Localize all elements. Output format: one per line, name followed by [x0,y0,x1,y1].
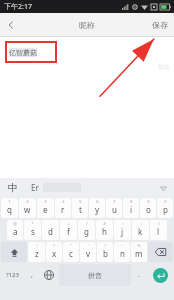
button[interactable]: 6 [89,198,105,218]
button[interactable]: 返回 [0,14,22,36]
button[interactable]: 切换输入法 [40,264,57,286]
button[interactable]: / [78,220,95,240]
staticText: h [102,226,107,237]
staticText: - [50,221,52,226]
staticText: q [7,204,12,215]
button[interactable]: 保存 [146,13,174,36]
staticText: d [48,226,53,237]
button[interactable]: Er [31,182,39,193]
button[interactable]: 收起键盘 [155,180,171,196]
staticText: i [130,204,133,215]
staticText: 6 [96,199,99,204]
staticText: 4 [62,199,65,204]
staticText: j [121,226,124,237]
button[interactable]: + [60,220,77,240]
staticText: 5 [79,199,82,204]
button[interactable]: 亿智蘑菇 [5,41,57,63]
staticText: g [84,226,89,237]
staticText: s [31,226,35,237]
staticText: u [112,204,117,215]
button[interactable]: 1 [1,198,18,218]
button[interactable]: @ [7,220,23,240]
staticText: l [157,226,160,237]
staticText: ! [36,243,38,248]
button[interactable]: 5 [72,198,88,218]
button[interactable]: ! [28,242,45,262]
staticText: t [79,204,82,215]
button[interactable]: 9 [140,198,156,218]
staticText: 3 [44,199,47,204]
staticText: ? [53,243,55,248]
button[interactable]: # [96,220,113,240]
button[interactable]: 2 [19,198,36,218]
staticText: 保存 [152,20,168,30]
staticText: 中 [8,181,18,194]
button[interactable]: 3 [37,198,54,218]
staticText: " [70,243,72,248]
button[interactable]: 0 [157,198,173,218]
staticText: ?123 [6,271,19,279]
staticText: a [13,226,18,237]
staticText: r [61,204,65,215]
staticText: n [120,248,125,259]
button[interactable]: 拼音 [59,264,131,286]
staticText: m [135,248,143,259]
button[interactable]: ) [97,242,113,262]
staticText: e [43,204,48,215]
staticText: 下午2:17 [4,2,32,12]
button[interactable]: 删除 [148,242,173,262]
staticText: k [138,226,143,237]
staticText: , [31,270,33,280]
staticText: 9 [147,199,150,204]
staticText: y [95,204,100,215]
staticText: 亿智蘑菇 [9,48,37,57]
button[interactable]: ? [46,242,62,262]
button[interactable]: 8 [123,198,139,218]
button[interactable]: Shift [1,242,27,262]
button[interactable]: % [131,242,147,262]
button[interactable]: 4 [55,198,71,218]
staticText: 7 [113,199,116,204]
staticText: @ [13,221,17,226]
staticText: # [103,221,106,226]
staticText: f [67,226,70,237]
button[interactable]: ?123 [1,264,24,286]
button[interactable]: " [63,242,79,262]
button[interactable]: , [26,264,38,286]
staticText: z [35,248,39,259]
button[interactable]: 回车 [147,264,173,286]
staticText: w [24,204,31,215]
staticText: ) [104,243,106,248]
staticText: : [122,221,124,226]
staticText: . [138,270,140,280]
button[interactable]: * [24,220,41,240]
button[interactable]: . [133,264,145,286]
button[interactable]: 7 [106,198,122,218]
staticText: o [146,204,151,215]
staticText: v [86,248,91,259]
button[interactable]: : [114,220,131,240]
staticText: x [52,248,57,259]
staticText: ; [140,221,142,226]
staticText: * [31,221,34,226]
staticText: ~ [121,243,124,248]
staticText: / [86,221,88,226]
button[interactable]: ; [132,220,149,240]
staticText: 拼音 [88,271,102,280]
button[interactable]: ( [150,220,167,240]
staticText: b [103,248,108,259]
staticText: ( [158,221,160,226]
staticText: 8 [130,199,133,204]
staticText: 昵称 [79,20,95,30]
staticText: + [67,221,70,226]
staticText: p [163,204,168,215]
staticText: ' [88,243,89,248]
staticText: 1 [8,199,11,204]
staticText: % [137,243,141,248]
button[interactable]: ~ [114,242,130,262]
button[interactable]: - [42,220,59,240]
button[interactable]: ' [80,242,96,262]
staticText: 2 [26,199,29,204]
button[interactable]: 中英文切换 [3,178,23,197]
